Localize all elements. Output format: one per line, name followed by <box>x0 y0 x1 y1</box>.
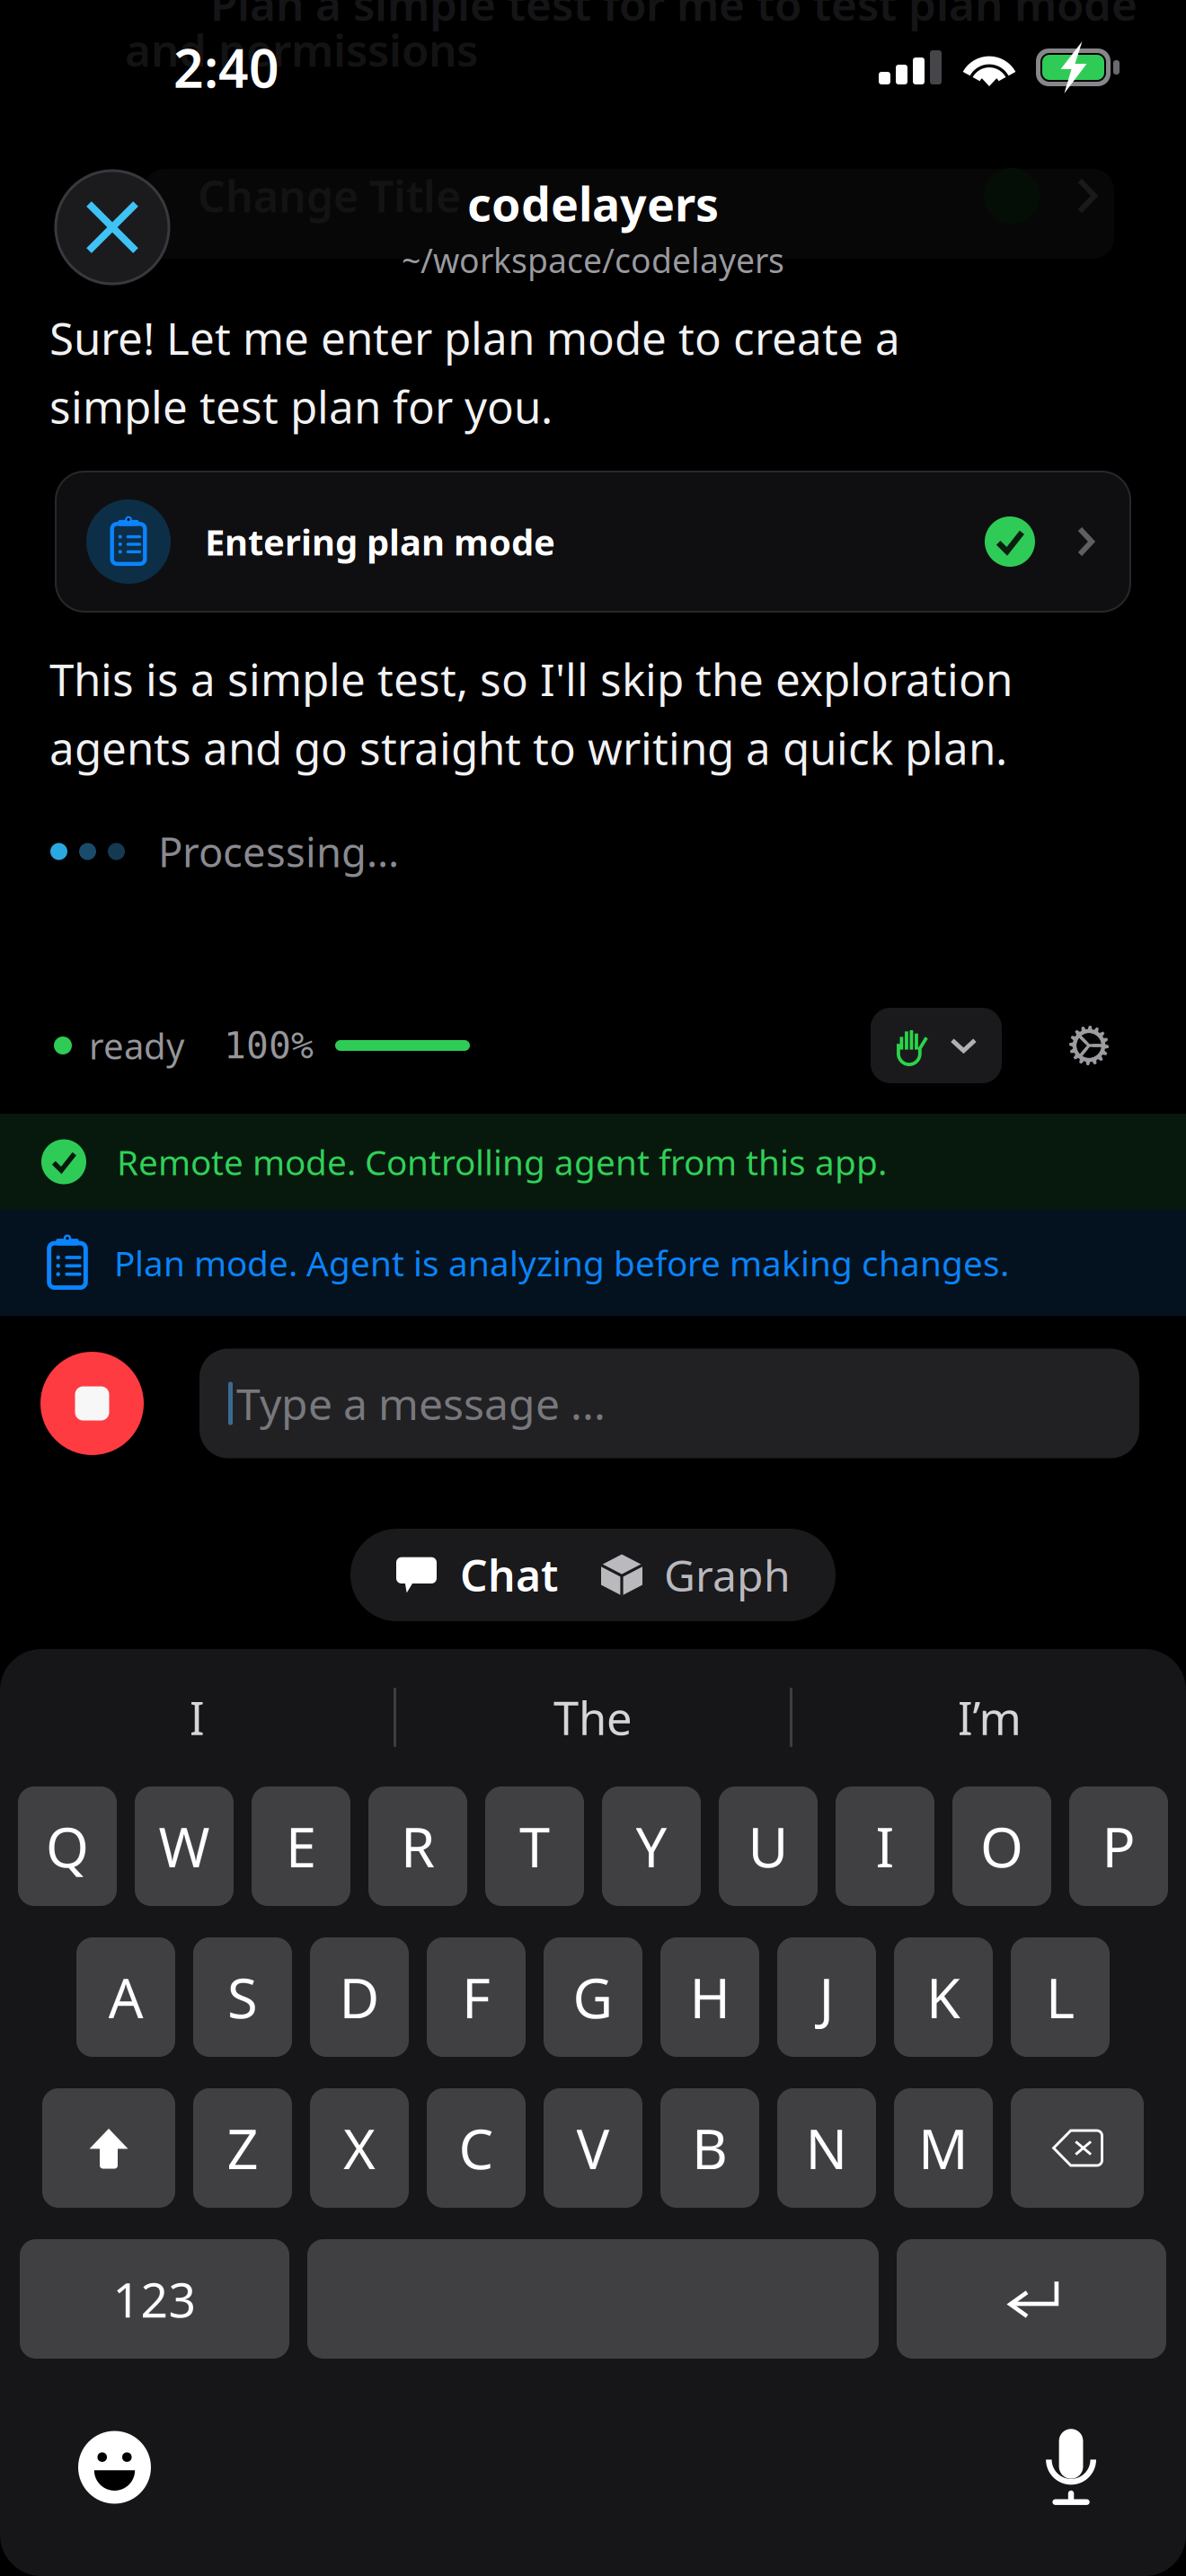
button[interactable]: O <box>952 1786 1051 1906</box>
staticText: F <box>462 1961 491 2034</box>
button[interactable]: Return <box>897 2239 1166 2359</box>
staticText: Chat <box>460 1546 558 1604</box>
staticText: Type a message ... <box>236 1375 606 1432</box>
button[interactable]: R <box>368 1786 467 1906</box>
button[interactable]: B <box>660 2088 759 2208</box>
button[interactable]: I <box>836 1786 934 1906</box>
staticText: I’m <box>957 1687 1021 1748</box>
button[interactable]: 123 <box>20 2239 289 2359</box>
staticText: Plan a simple test for me to test plan m… <box>210 0 1137 33</box>
staticText: and permissions <box>125 20 478 79</box>
button[interactable]: Dictate <box>1046 2429 1096 2506</box>
staticText: K <box>926 1961 960 2034</box>
button[interactable]: V <box>544 2088 642 2208</box>
staticText: U <box>748 1810 788 1883</box>
staticText: R <box>401 1810 435 1883</box>
button[interactable]: A <box>76 1937 175 2057</box>
button[interactable]: X <box>310 2088 409 2208</box>
staticText: The <box>553 1687 633 1748</box>
button[interactable]: Graph <box>601 1529 836 1621</box>
staticText: 100% <box>224 1024 314 1067</box>
button[interactable]: I’m <box>792 1649 1186 1786</box>
button[interactable]: E <box>252 1786 350 1906</box>
button[interactable]: C <box>427 2088 526 2208</box>
staticText: I <box>189 1687 204 1748</box>
button[interactable]: P <box>1069 1786 1168 1906</box>
staticText: D <box>339 1961 380 2034</box>
button[interactable]: Z <box>193 2088 292 2208</box>
staticText: T <box>519 1810 550 1883</box>
staticText: This is a simple test, so I'll skip the … <box>49 649 1013 777</box>
button[interactable]: W <box>135 1786 234 1906</box>
button[interactable]: Emoji <box>78 2431 151 2504</box>
button[interactable]: Type a message ... <box>199 1349 1139 1458</box>
staticText: S <box>227 1961 258 2034</box>
button[interactable]: U <box>719 1786 818 1906</box>
button[interactable]: Entering plan mode <box>56 472 1130 612</box>
button[interactable]: Stop <box>40 1352 144 1455</box>
staticText: Change Title <box>198 167 461 224</box>
staticText: O <box>980 1810 1023 1883</box>
staticText: H <box>690 1961 730 2034</box>
staticText: L <box>1046 1961 1075 2034</box>
staticText: Y <box>636 1810 667 1883</box>
button[interactable]: Space <box>307 2239 879 2359</box>
button[interactable]: F <box>427 1937 526 2057</box>
button[interactable]: Y <box>602 1786 701 1906</box>
staticText: Sure! Let me enter plan mode to create a… <box>49 308 900 436</box>
staticText: V <box>576 2111 610 2185</box>
staticText: Entering plan mode <box>205 518 555 565</box>
staticText: J <box>819 1961 834 2034</box>
staticText: B <box>692 2111 728 2185</box>
button[interactable]: I <box>0 1649 394 1786</box>
staticText: ~/workspace/codelayers <box>402 238 784 282</box>
staticText: Z <box>227 2111 258 2185</box>
staticText: Q <box>46 1810 89 1883</box>
button[interactable]: N <box>777 2088 876 2208</box>
staticText: M <box>918 2111 969 2185</box>
button[interactable]: K <box>894 1937 993 2057</box>
button[interactable]: H <box>660 1937 759 2057</box>
staticText: 2:40 <box>173 32 279 102</box>
staticText: A <box>108 1961 143 2034</box>
button[interactable]: The <box>396 1649 790 1786</box>
staticText: Plan mode. Agent is analyzing before mak… <box>114 1240 1009 1286</box>
button[interactable]: T <box>485 1786 584 1906</box>
button[interactable]: Chat <box>350 1529 583 1621</box>
button[interactable]: Shift <box>42 2088 175 2208</box>
staticText: C <box>459 2111 494 2185</box>
staticText: P <box>1102 1810 1135 1883</box>
staticText: E <box>286 1810 316 1883</box>
button[interactable]: Permission mode <box>871 1008 1002 1083</box>
staticText: W <box>159 1810 210 1883</box>
button[interactable]: Close <box>56 171 169 284</box>
staticText: Remote mode. Controlling agent from this… <box>117 1139 887 1185</box>
button[interactable]: M <box>894 2088 993 2208</box>
staticText: X <box>343 2111 376 2185</box>
button[interactable]: L <box>1011 1937 1110 2057</box>
button[interactable]: S <box>193 1937 292 2057</box>
staticText: 123 <box>113 2267 196 2331</box>
staticText: I <box>876 1810 894 1883</box>
button[interactable]: Q <box>18 1786 117 1906</box>
staticText: G <box>573 1961 613 2034</box>
staticText: Processing... <box>158 824 399 879</box>
button[interactable]: Delete <box>1011 2088 1144 2208</box>
button[interactable]: D <box>310 1937 409 2057</box>
staticText: Graph <box>664 1546 791 1604</box>
staticText: ready <box>89 1022 184 1069</box>
button[interactable]: G <box>544 1937 642 2057</box>
staticText: codelayers <box>467 172 719 234</box>
button[interactable]: J <box>777 1937 876 2057</box>
staticText: N <box>805 2111 848 2185</box>
button[interactable]: Settings <box>1069 1026 1109 1065</box>
